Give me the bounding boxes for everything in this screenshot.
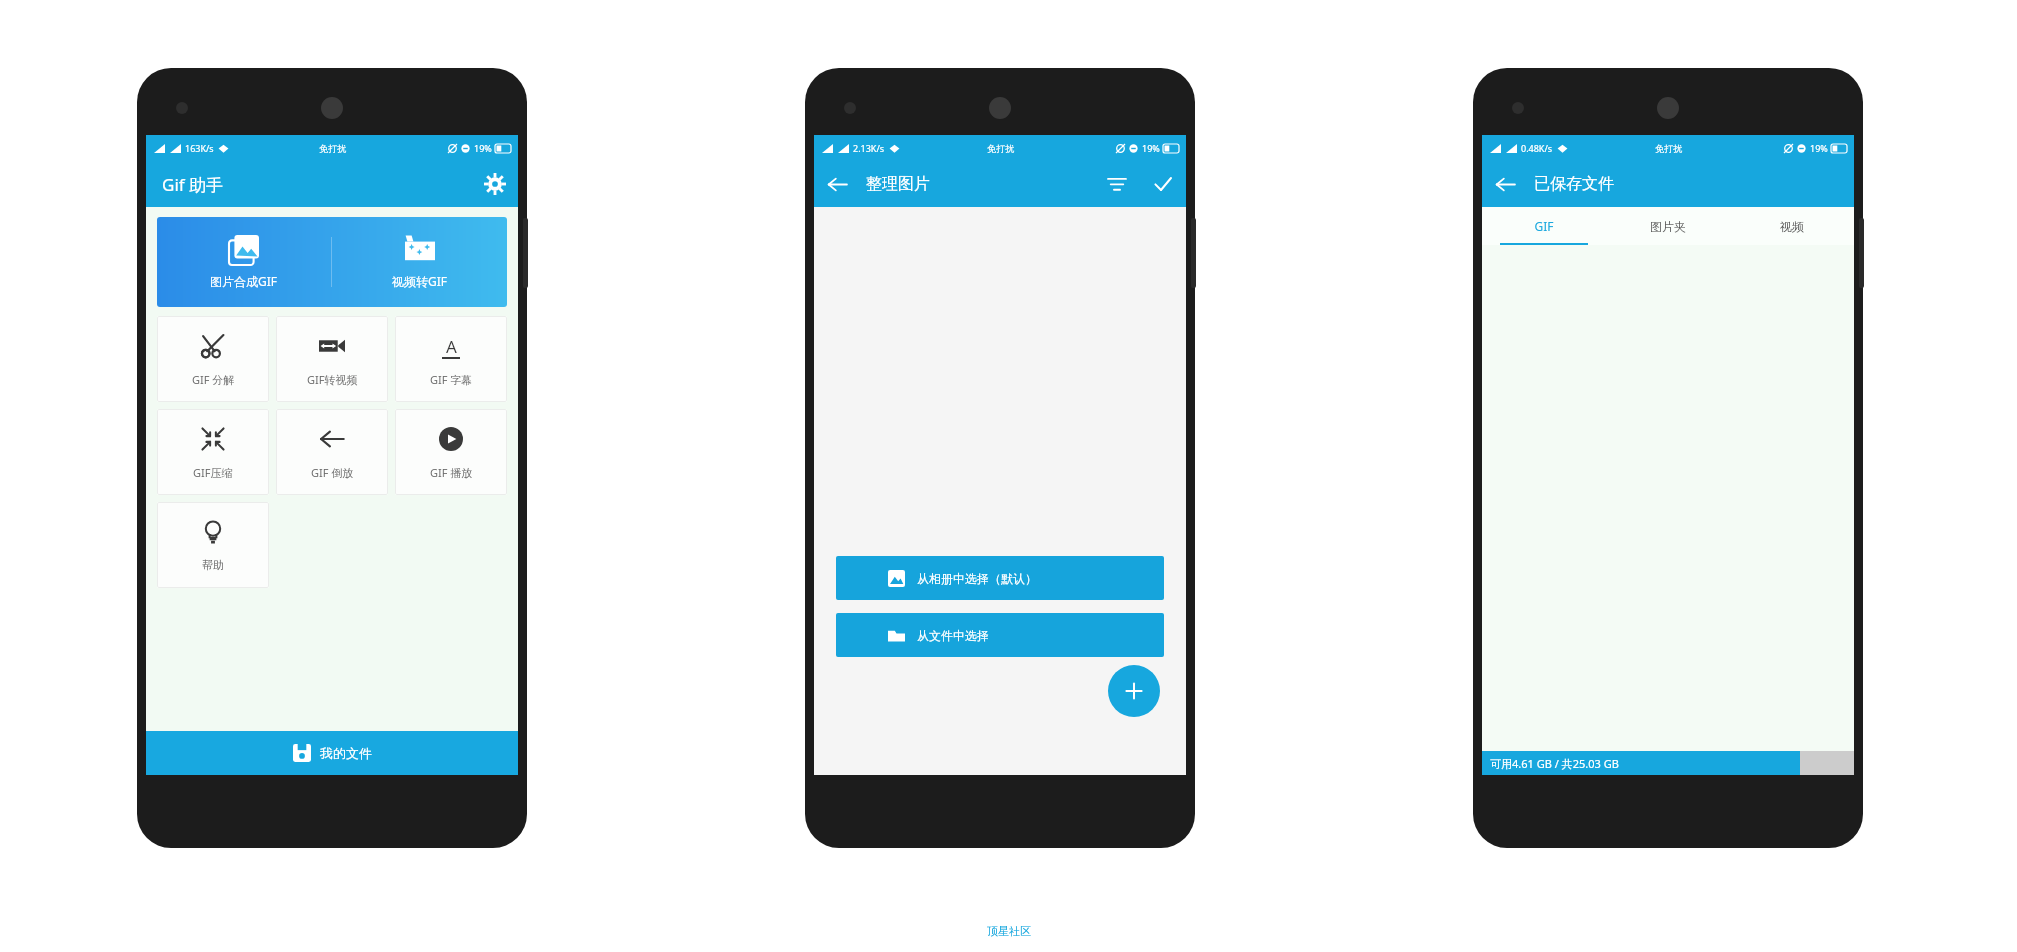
staticText: GIF 分解 xyxy=(192,372,235,387)
staticText: 整理图片 xyxy=(866,174,930,194)
staticText: 顶星社区 xyxy=(987,924,1031,938)
button[interactable]: 视频转GIF xyxy=(332,217,507,307)
button[interactable]: Back xyxy=(814,161,860,207)
button[interactable]: Settings xyxy=(472,161,518,207)
staticText: GIF 倒放 xyxy=(311,465,354,480)
button[interactable]: 图片合成GIF xyxy=(157,217,331,307)
staticText: 免打扰 xyxy=(987,143,1014,154)
button[interactable]: Filter xyxy=(1094,161,1140,207)
staticText: 19% xyxy=(1810,142,1828,154)
button[interactable]: 从文件中选择 xyxy=(836,613,1164,657)
staticText: GIF转视频 xyxy=(307,372,358,387)
button[interactable]: Confirm xyxy=(1140,161,1186,207)
button[interactable]: GIF xyxy=(1482,207,1606,245)
button[interactable]: 我的文件 xyxy=(146,731,518,775)
staticText: GIF 播放 xyxy=(430,465,473,480)
staticText: GIF压缩 xyxy=(193,465,233,480)
staticText: 19% xyxy=(474,142,492,154)
button[interactable]: GIF 分解 xyxy=(157,316,269,402)
staticText: 已保存文件 xyxy=(1534,174,1614,194)
staticText: 我的文件 xyxy=(320,745,372,761)
staticText: 免打扰 xyxy=(319,143,346,154)
button[interactable]: GIF压缩 xyxy=(157,409,269,495)
staticText: 19% xyxy=(1142,142,1160,154)
staticText: 帮助 xyxy=(202,558,224,572)
staticText: 从相册中选择（默认） xyxy=(917,571,1037,586)
staticText: Gif 助手 xyxy=(162,173,224,196)
button[interactable]: GIF 播放 xyxy=(395,409,507,495)
staticText: GIF 字幕 xyxy=(430,372,473,387)
button[interactable]: 从相册中选择（默认） xyxy=(836,556,1164,600)
staticText: 从文件中选择 xyxy=(917,628,989,643)
staticText: 图片合成GIF xyxy=(210,273,278,289)
staticText: 可用4.61 GB / 共25.03 GB xyxy=(1490,756,1619,771)
staticText: 图片夹 xyxy=(1650,219,1686,234)
staticText: 0.48K/s xyxy=(1521,142,1553,154)
staticText: GIF xyxy=(1534,218,1554,234)
button[interactable]: Back xyxy=(1482,161,1528,207)
staticText: 视频 xyxy=(1780,219,1804,234)
button[interactable]: 视频 xyxy=(1730,207,1854,245)
staticText: 163K/s xyxy=(185,142,214,154)
staticText: 2.13K/s xyxy=(853,142,885,154)
button[interactable]: A xyxy=(395,316,507,402)
staticText: 视频转GIF xyxy=(392,273,448,289)
button[interactable]: 帮助 xyxy=(157,502,269,588)
staticText: 免打扰 xyxy=(1655,143,1682,154)
button[interactable]: 图片夹 xyxy=(1606,207,1730,245)
button[interactable]: GIF转视频 xyxy=(276,316,388,402)
button[interactable]: GIF 倒放 xyxy=(276,409,388,495)
button[interactable]: Add xyxy=(1108,665,1160,717)
staticText: A xyxy=(446,335,457,358)
